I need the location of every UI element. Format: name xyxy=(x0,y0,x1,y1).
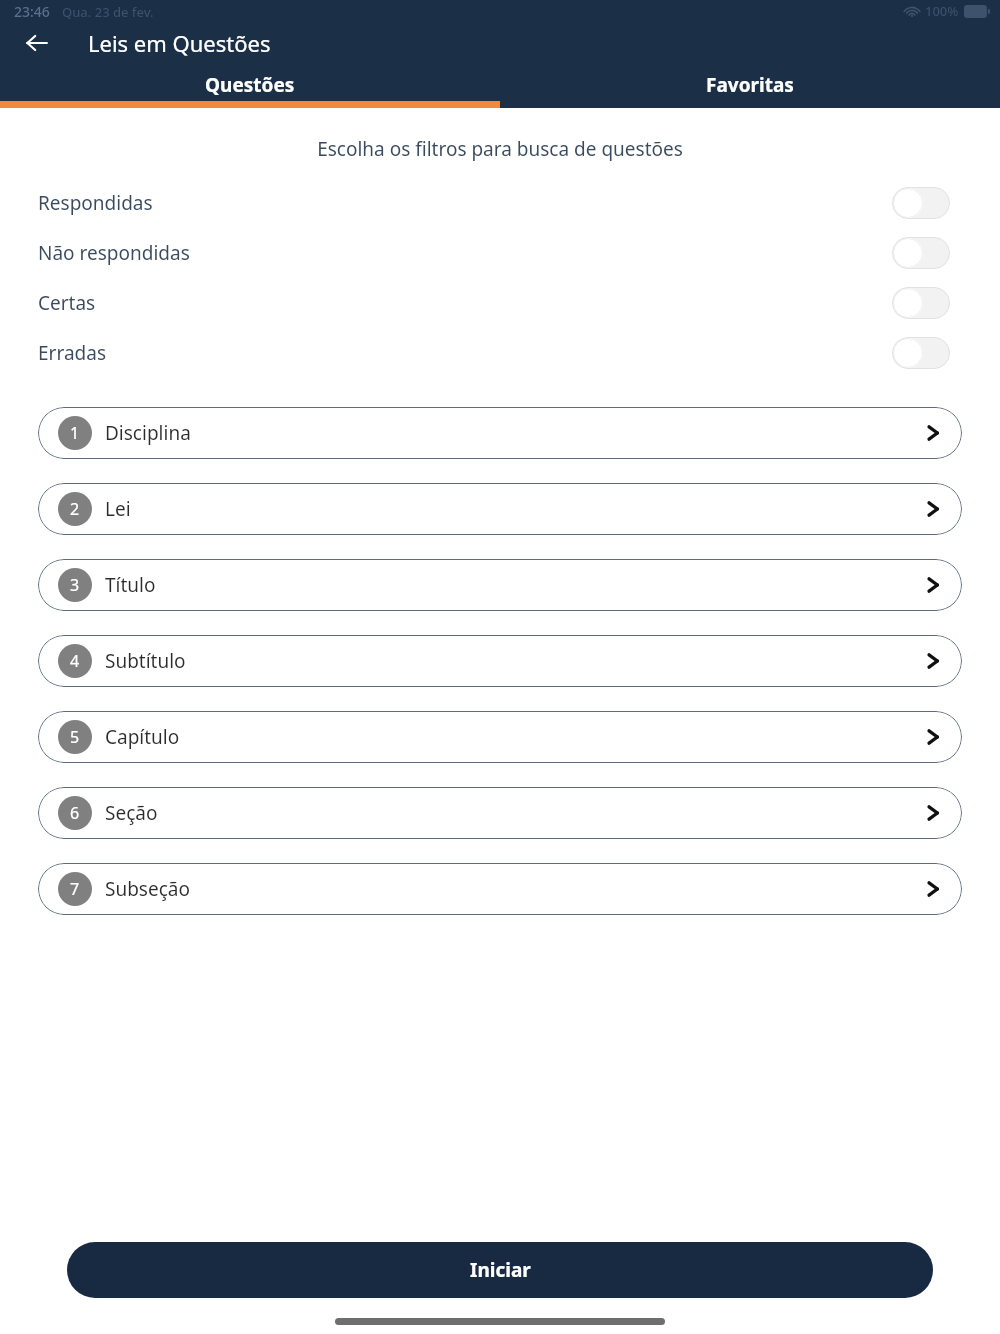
staticText: Título xyxy=(105,572,156,598)
staticText: Escolha os filtros para busca de questõe… xyxy=(0,136,1000,162)
button[interactable]: Questões xyxy=(0,64,500,108)
staticText: 7 xyxy=(70,878,80,900)
staticText: Questões xyxy=(205,72,295,98)
staticText: Respondidas xyxy=(38,190,153,216)
button[interactable]: Voltar xyxy=(14,22,60,64)
staticText: Subseção xyxy=(105,876,190,902)
staticText: 3 xyxy=(70,574,80,596)
staticText: 2 xyxy=(70,498,80,520)
staticText: 5 xyxy=(70,726,80,748)
button[interactable]: 6 xyxy=(38,787,962,839)
staticText: 23:46 xyxy=(14,2,50,21)
staticText: Não respondidas xyxy=(38,240,190,266)
button[interactable]: 2 xyxy=(38,483,962,535)
button[interactable]: Erradas xyxy=(0,328,1000,378)
button[interactable]: 7 xyxy=(38,863,962,915)
staticText: 4 xyxy=(70,650,80,672)
button[interactable]: Certas xyxy=(0,278,1000,328)
button[interactable] xyxy=(892,337,950,369)
button[interactable]: Favoritas xyxy=(500,64,1000,108)
button[interactable]: Iniciar xyxy=(67,1242,933,1298)
button[interactable]: 5 xyxy=(38,711,962,763)
button[interactable] xyxy=(892,187,950,219)
button[interactable] xyxy=(892,237,950,269)
button[interactable]: Respondidas xyxy=(0,178,1000,228)
staticText: 1 xyxy=(70,422,80,444)
staticText: Disciplina xyxy=(105,420,191,446)
button[interactable] xyxy=(892,287,950,319)
button[interactable]: 1 xyxy=(38,407,962,459)
staticText: 100% xyxy=(925,2,959,20)
button[interactable]: 4 xyxy=(38,635,962,687)
button[interactable]: 3 xyxy=(38,559,962,611)
staticText: Erradas xyxy=(38,340,106,366)
staticText: 6 xyxy=(70,802,80,824)
staticText: Subtítulo xyxy=(105,648,186,674)
staticText: Lei xyxy=(105,496,131,522)
staticText: Certas xyxy=(38,290,96,316)
staticText: Qua. 23 de fev. xyxy=(62,3,154,21)
staticText: Iniciar xyxy=(470,1257,531,1283)
button[interactable]: Não respondidas xyxy=(0,228,1000,278)
staticText: Favoritas xyxy=(706,72,794,98)
staticText: Leis em Questões xyxy=(88,28,271,58)
staticText: Seção xyxy=(105,800,158,826)
staticText: Capítulo xyxy=(105,724,180,750)
